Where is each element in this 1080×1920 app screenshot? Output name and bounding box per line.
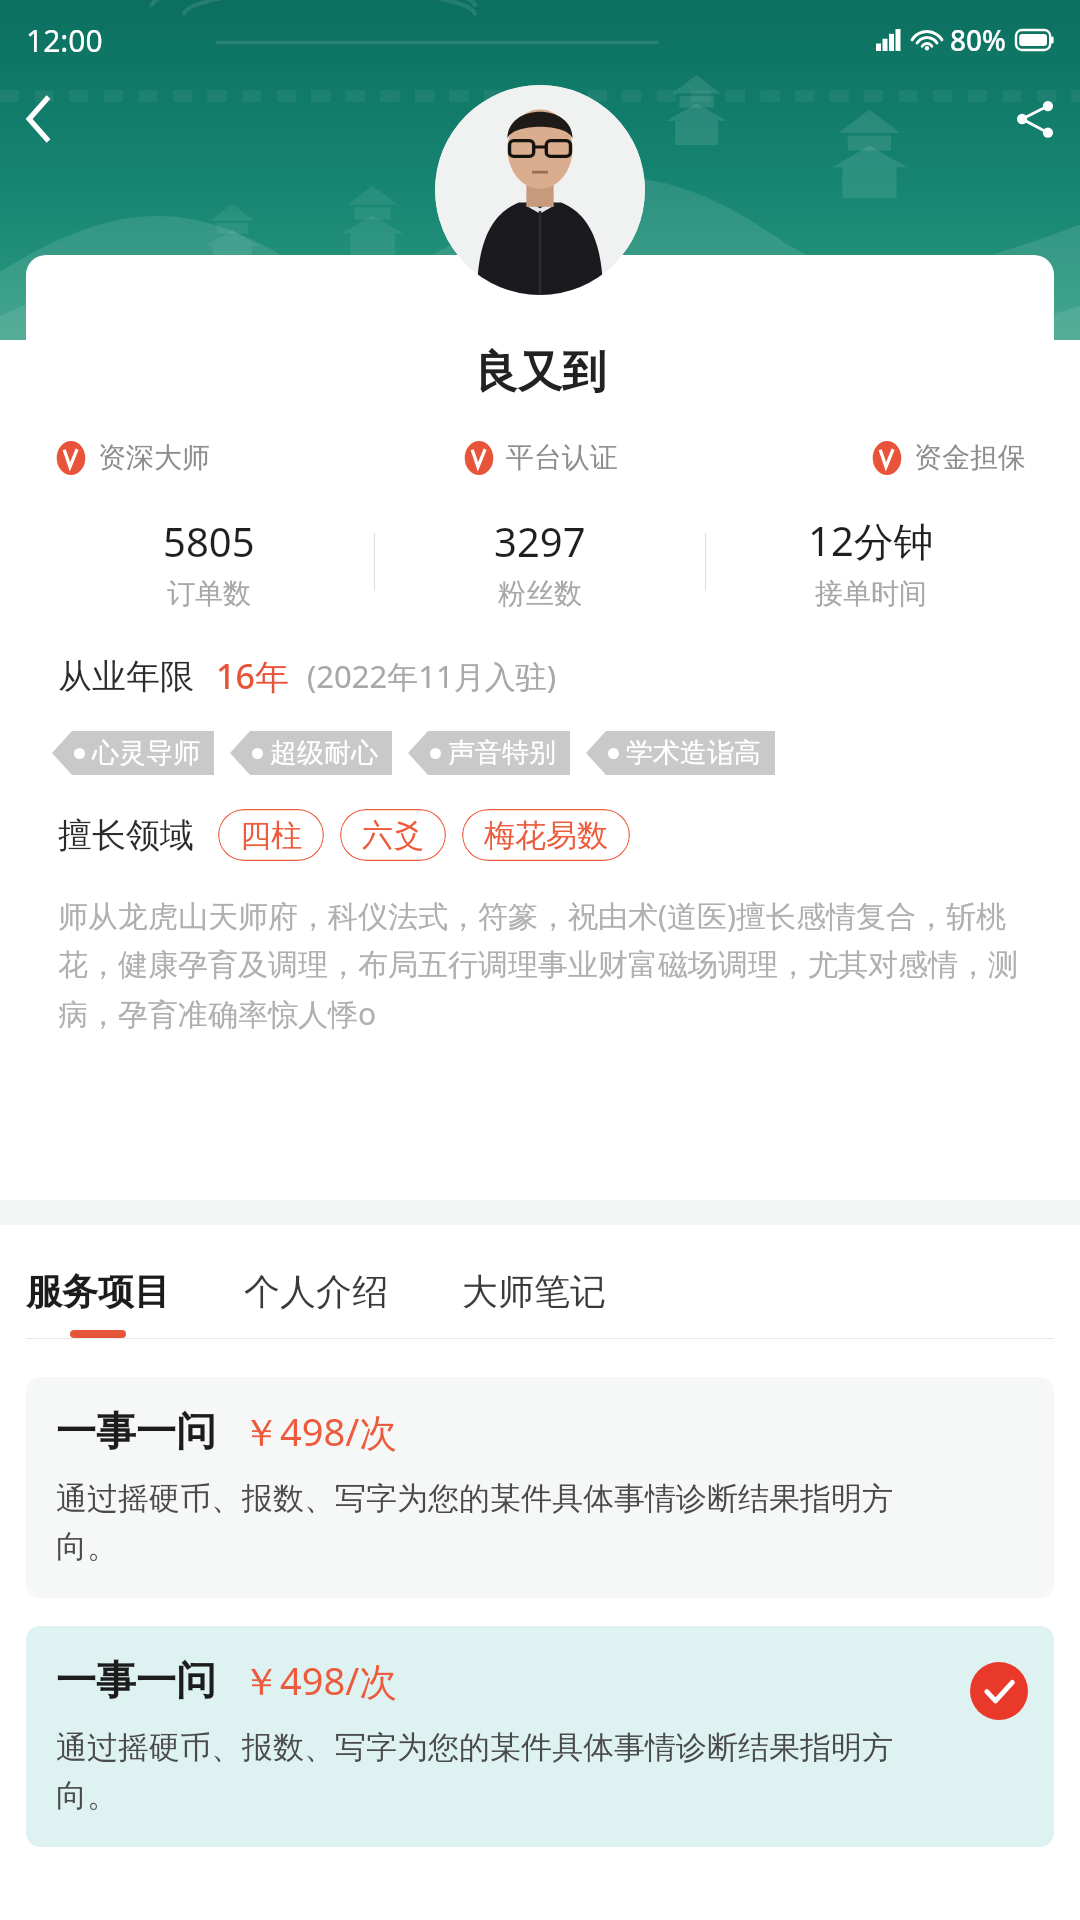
staticText: 服务项目 xyxy=(26,1269,170,1314)
button[interactable]: Profile photo xyxy=(435,85,645,295)
button[interactable]: 服务项目 xyxy=(26,1269,170,1338)
button[interactable]: 大师笔记 xyxy=(462,1269,606,1338)
staticText: 80% xyxy=(950,21,1006,59)
button[interactable]: 个人介绍 xyxy=(244,1269,388,1338)
button[interactable]: 学术造诣高 xyxy=(586,731,775,775)
staticText: 通过摇硬币、报数、写字为您的某件具体事情诊断结果指明方向。 xyxy=(56,1728,931,1815)
button[interactable]: 声音特别 xyxy=(408,731,570,775)
staticText: 六爻 xyxy=(362,816,424,855)
staticText: 一事一问 xyxy=(56,1406,216,1456)
staticText: 粉丝数 xyxy=(498,576,582,611)
staticText: ￥498/次 xyxy=(242,1405,398,1457)
staticText: 订单数 xyxy=(167,576,251,611)
staticText: 超级耐心 xyxy=(270,736,378,770)
staticText: 梅花易数 xyxy=(484,816,608,855)
button[interactable]: Share xyxy=(1004,88,1066,150)
staticText: 资深大师 xyxy=(98,440,210,475)
button[interactable]: 心灵导师 xyxy=(52,731,214,775)
staticText: 12:00 xyxy=(26,20,103,61)
staticText: 资金担保 xyxy=(914,440,1026,475)
staticText: 大师笔记 xyxy=(462,1269,606,1314)
staticText: 良又到 xyxy=(26,345,1054,400)
button[interactable]: 六爻 xyxy=(340,809,446,861)
other: Selected xyxy=(970,1662,1028,1720)
staticText: 四柱 xyxy=(240,816,302,855)
staticText: 个人介绍 xyxy=(244,1269,388,1314)
staticText: 3297 xyxy=(494,514,586,568)
button[interactable]: 超级耐心 xyxy=(230,731,392,775)
staticText: 学术造诣高 xyxy=(626,736,761,770)
staticText: 5805 xyxy=(163,514,255,568)
staticText: 平台认证 xyxy=(506,440,618,475)
staticText: 16年 xyxy=(216,653,289,699)
staticText: 12分钟 xyxy=(808,513,934,568)
staticText: 通过摇硬币、报数、写字为您的某件具体事情诊断结果指明方向。 xyxy=(56,1479,931,1566)
staticText: 心灵导师 xyxy=(92,736,200,770)
button[interactable]: 梅花易数 xyxy=(462,809,630,861)
button[interactable]: Back xyxy=(8,88,70,150)
button[interactable]: 四柱 xyxy=(218,809,324,861)
staticText: 擅长领域 xyxy=(58,814,194,857)
staticText: (2022年11月入驻) xyxy=(307,655,556,697)
staticText: 接单时间 xyxy=(815,576,927,611)
button[interactable]: 一事一问 xyxy=(26,1626,1054,1847)
staticText: 声音特别 xyxy=(448,736,556,770)
staticText: 从业年限 xyxy=(58,655,194,698)
staticText: 师从龙虎山天师府，科仪法式，符篆，祝由术(道医)擅长感情复合，斩桃花，健康孕育及… xyxy=(58,895,1022,1034)
button[interactable]: 一事一问 xyxy=(26,1377,1054,1598)
staticText: ￥498/次 xyxy=(242,1654,398,1706)
staticText: 一事一问 xyxy=(56,1655,216,1705)
